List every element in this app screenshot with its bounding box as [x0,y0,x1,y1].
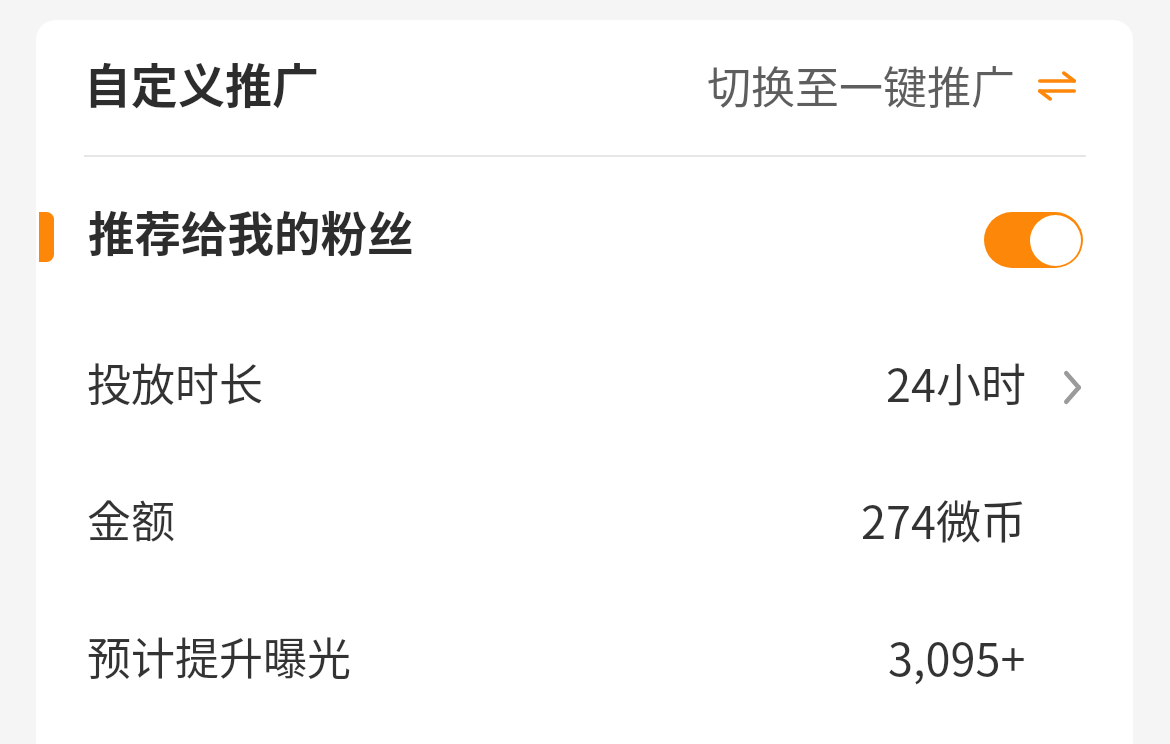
staticText: 24小时 [886,350,1026,415]
staticText: 274微币 [861,487,1026,552]
button[interactable]: 推荐给我的粉丝开关 [984,212,1083,268]
other: 切换 [1038,71,1076,101]
staticText: 金额 [87,487,175,551]
staticText: 自定义推广 [84,48,319,116]
button[interactable]: 推荐给我的粉丝 [36,156,1133,310]
button[interactable]: 投放时长 [36,310,1133,450]
staticText: 推荐给我的粉丝 [88,197,414,264]
staticText: 切换至一键推广 [707,53,1015,117]
staticText: 3,095+ [888,624,1026,689]
button[interactable]: 预计提升曝光 [36,590,1133,730]
button[interactable]: 金额 [36,450,1133,590]
button[interactable]: 切换至一键推广 [700,36,1086,122]
staticText: 投放时长 [87,350,263,414]
staticText: 预计提升曝光 [87,624,351,688]
